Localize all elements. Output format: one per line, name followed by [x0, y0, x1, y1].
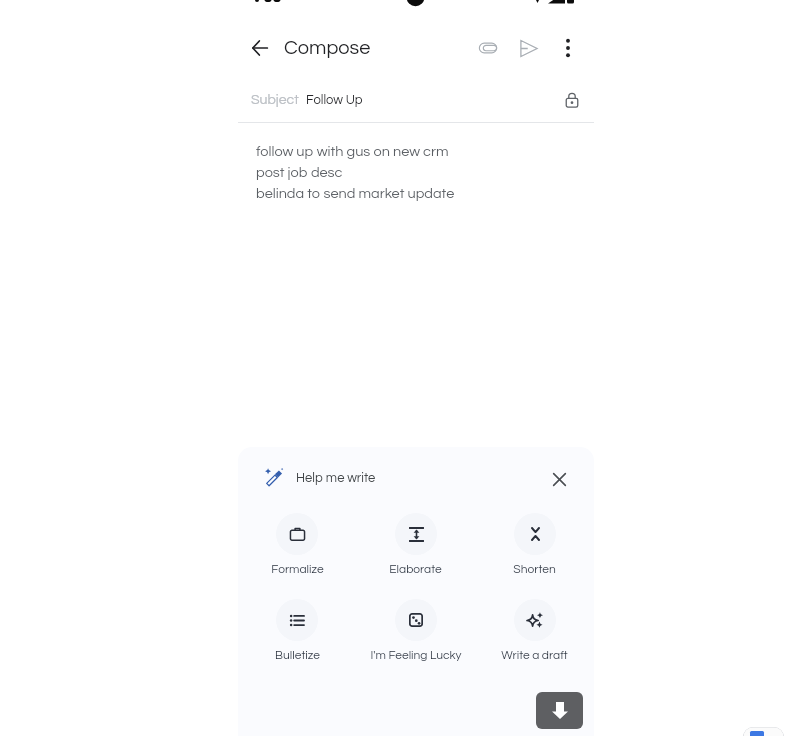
staticText: I'm Feeling Lucky [370, 649, 462, 661]
button[interactable]: Formalize [238, 511, 356, 577]
staticText: follow up with gus on new crm [256, 144, 449, 159]
button[interactable]: I'm Feeling Lucky [356, 597, 475, 663]
button[interactable]: Attach file [468, 28, 508, 68]
button[interactable]: Close [540, 460, 578, 498]
staticText: post job desc [256, 165, 343, 180]
staticText: Follow Up [306, 93, 363, 106]
button[interactable]: Overlay control [743, 727, 784, 736]
staticText: Help me write [296, 471, 376, 484]
staticText: Shorten [513, 563, 556, 575]
button[interactable]: Hide keyboard [536, 692, 583, 729]
staticText: belinda to send market update [256, 186, 455, 201]
button[interactable]: Send [508, 28, 548, 68]
staticText: Elaborate [389, 563, 442, 575]
staticText: Formalize [271, 563, 324, 575]
button[interactable]: Back [238, 26, 282, 70]
staticText: Subject [251, 93, 299, 107]
staticText: Bulletize [275, 649, 320, 661]
button[interactable]: Elaborate [356, 511, 475, 577]
staticText: Write a draft [501, 649, 568, 661]
button[interactable]: Write a draft [475, 597, 594, 663]
button[interactable]: Bulletize [238, 597, 356, 663]
staticText: Compose [284, 38, 371, 59]
button[interactable]: Subject [238, 76, 594, 123]
button[interactable]: More options [548, 28, 588, 68]
button[interactable]: Shorten [475, 511, 594, 577]
